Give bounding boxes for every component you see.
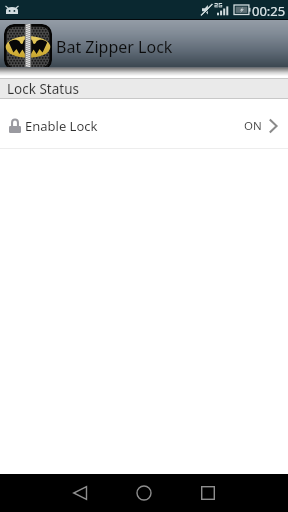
staticText: ON bbox=[244, 118, 262, 134]
staticText: 00:25 bbox=[252, 2, 286, 20]
staticText: Enable Lock bbox=[25, 117, 98, 135]
button[interactable]: Home bbox=[112, 474, 176, 512]
button[interactable]: Back bbox=[48, 474, 112, 512]
button[interactable]: Enable Lock bbox=[0, 99, 288, 148]
button[interactable]: Recent apps bbox=[176, 474, 240, 512]
staticText: Bat Zipper Lock bbox=[56, 36, 173, 58]
staticText: Lock Status bbox=[7, 80, 79, 98]
